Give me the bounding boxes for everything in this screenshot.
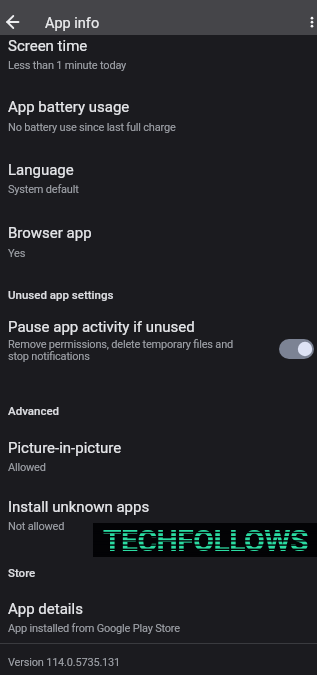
staticText: Remove permissions, delete temporary fil… — [8, 338, 234, 351]
staticText: Store — [8, 566, 36, 579]
staticText: No battery use since last full charge — [8, 121, 176, 134]
staticText: Allowed — [8, 461, 46, 474]
staticText: Install unknown apps — [8, 498, 150, 516]
button[interactable]: Picture-in-picture — [0, 435, 317, 493]
button[interactable]: App details — [0, 595, 317, 640]
staticText: Version 114.0.5735.131 — [8, 656, 121, 669]
staticText: TECHFOLLOWS — [103, 523, 308, 557]
staticText: Pause app activity if unused — [8, 318, 195, 336]
staticText: System default — [8, 183, 79, 196]
staticText: Language — [8, 161, 74, 179]
staticText: Advanced — [8, 404, 60, 417]
button[interactable] — [299, 0, 317, 35]
staticText: Screen time — [8, 37, 88, 55]
staticText: App installed from Google Play Store — [8, 622, 180, 635]
staticText: stop notifications — [8, 350, 90, 363]
staticText: Browser app — [8, 224, 92, 242]
button[interactable]: App battery usage — [0, 97, 317, 160]
staticText: Picture-in-picture — [8, 439, 122, 457]
staticText: App info — [45, 15, 100, 32]
staticText: App battery usage — [8, 98, 130, 116]
button[interactable]: Pause app activity if unused — [0, 313, 317, 398]
staticText: Yes — [8, 247, 26, 260]
staticText: Less than 1 minute today — [8, 59, 127, 72]
staticText: App details — [8, 600, 83, 618]
staticText: Not allowed — [8, 520, 65, 533]
button[interactable] — [279, 339, 314, 359]
button[interactable]: Language — [0, 160, 317, 223]
button[interactable]: Install unknown apps — [0, 493, 317, 523]
button[interactable] — [0, 0, 38, 35]
button[interactable]: Screen time — [0, 36, 317, 98]
button[interactable]: Browser app — [0, 223, 317, 284]
staticText: Unused app settings — [8, 288, 114, 301]
